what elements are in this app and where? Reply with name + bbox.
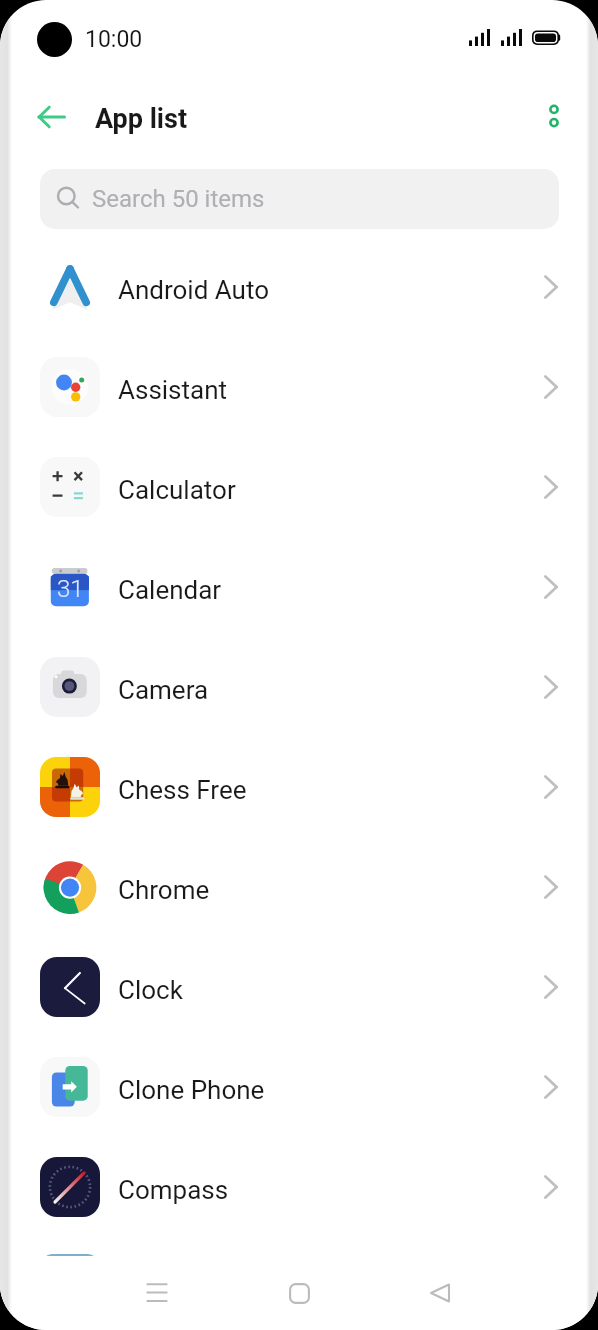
staticText: Clock [118, 975, 183, 1005]
button[interactable]: Clock [0, 937, 598, 1037]
button[interactable]: 31 [0, 537, 598, 637]
staticText: Calendar [118, 575, 222, 605]
button[interactable]: Recents [121, 1257, 193, 1329]
staticText: Compass [118, 1175, 229, 1205]
button[interactable]: Android Auto [0, 237, 598, 337]
staticText: Android Auto [118, 275, 270, 305]
button[interactable]: Camera [0, 637, 598, 737]
staticText: 10:00 [85, 26, 143, 53]
staticText: Chess Free [118, 775, 247, 805]
button[interactable]: More options [524, 86, 584, 146]
button[interactable]: Back [404, 1257, 476, 1329]
button[interactable]: Back [20, 86, 82, 148]
button[interactable]: Home [263, 1257, 335, 1329]
button[interactable]: Assistant [0, 337, 598, 437]
button[interactable]: Clone Phone [0, 1037, 598, 1137]
staticText: App list [95, 103, 188, 135]
button[interactable]: Calculator [0, 437, 598, 537]
button[interactable]: Chess Free [0, 737, 598, 837]
staticText: Camera [118, 675, 209, 705]
button[interactable]: Search 50 items [40, 169, 559, 229]
button[interactable]: Compass [0, 1137, 598, 1237]
button[interactable]: Chrome [0, 837, 598, 937]
staticText: Search 50 items [92, 185, 265, 213]
staticText: 31 [57, 575, 84, 603]
staticText: Clone Phone [118, 1075, 265, 1105]
staticText: Assistant [118, 375, 228, 405]
staticText: Calculator [118, 475, 236, 505]
staticText: Chrome [118, 875, 210, 905]
